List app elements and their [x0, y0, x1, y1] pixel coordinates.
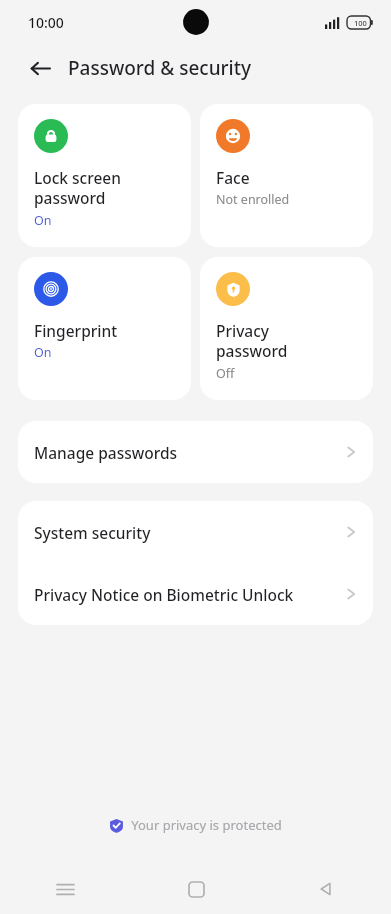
staticText: On [34, 212, 52, 229]
button[interactable]: Privacy Notice on Biometric Unlock [18, 563, 373, 625]
staticText: Lock screen password [34, 167, 121, 209]
staticText: Fingerprint [34, 320, 118, 341]
button[interactable]: Privacy password [200, 257, 373, 400]
button[interactable]: Manage passwords [18, 421, 373, 483]
staticText: Face [216, 167, 250, 188]
button[interactable]: Recent apps [0, 864, 131, 914]
staticText: 10:00 [28, 13, 64, 32]
staticText: Privacy Notice on Biometric Unlock [34, 584, 343, 605]
button[interactable]: Lock screen password [18, 104, 191, 247]
staticText: Your privacy is protected [131, 816, 282, 834]
staticText: Manage passwords [34, 442, 343, 463]
staticText: 100 [354, 18, 367, 28]
staticText: Off [216, 365, 235, 382]
staticText: Not enrolled [216, 191, 290, 208]
button[interactable]: Back [22, 50, 58, 86]
button[interactable]: Face [200, 104, 373, 247]
staticText: System security [34, 522, 343, 543]
staticText: Privacy password [216, 320, 288, 362]
button[interactable]: System security [18, 501, 373, 563]
staticText: On [34, 344, 52, 361]
button[interactable]: Home [131, 864, 261, 914]
button[interactable]: Fingerprint [18, 257, 191, 400]
button[interactable]: Back [261, 864, 391, 914]
staticText: Password & security [68, 55, 252, 81]
